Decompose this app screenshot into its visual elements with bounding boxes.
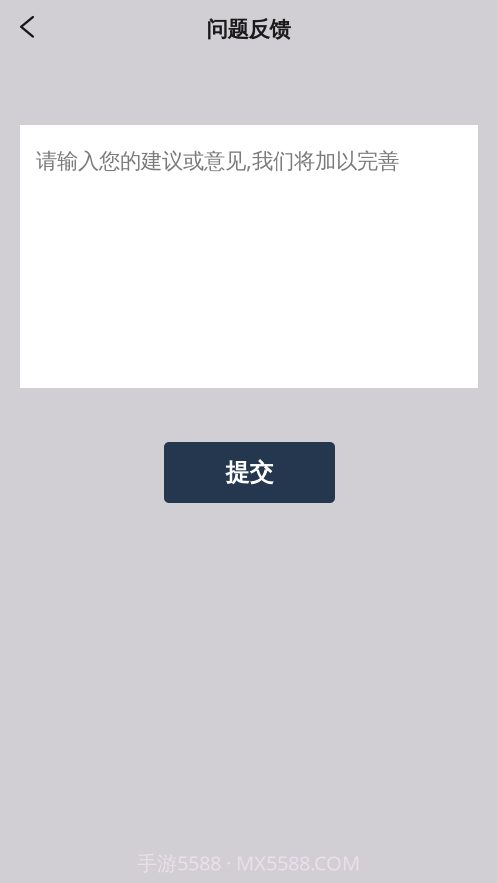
button[interactable]: Back: [0, 0, 49, 56]
button[interactable]: 提交: [164, 442, 335, 503]
button[interactable]: 请输入您的建议或意见,我们将加以完善: [20, 125, 478, 388]
staticText: 手游5588 · MX5588.COM: [137, 849, 360, 876]
staticText: 请输入您的建议或意见,我们将加以完善: [36, 146, 399, 174]
staticText: 提交: [225, 458, 273, 487]
staticText: 问题反馈: [206, 16, 290, 43]
